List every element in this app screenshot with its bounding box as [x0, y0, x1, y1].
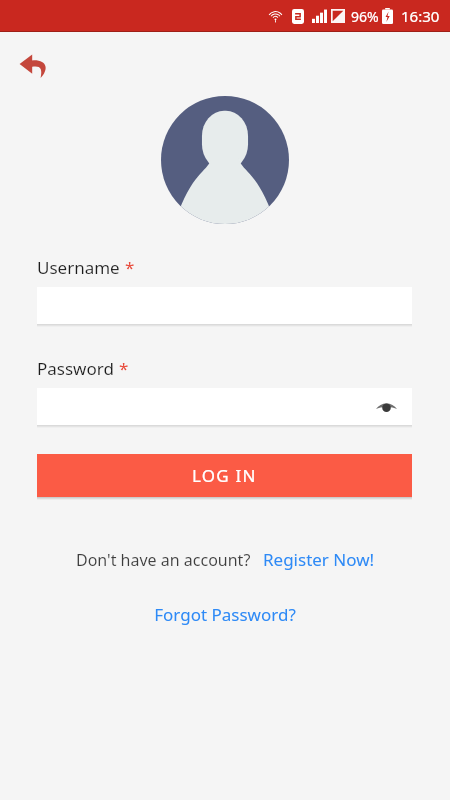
button[interactable]: Forgot Password? — [154, 603, 296, 626]
button[interactable]: Back — [10, 46, 58, 86]
staticText: Don't have an account? — [76, 549, 251, 571]
button[interactable]: Show password — [371, 394, 401, 420]
staticText: * — [125, 256, 135, 279]
staticText: Username — [37, 256, 120, 279]
staticText: Register Now! — [263, 548, 375, 571]
button[interactable]: LOG IN — [37, 454, 412, 497]
staticText: Password — [37, 357, 114, 380]
staticText: * — [119, 357, 129, 380]
staticText: Forgot Password? — [154, 603, 296, 626]
staticText: LOG IN — [192, 464, 257, 487]
staticText: 96% — [351, 7, 379, 26]
button[interactable]: Show password — [37, 388, 412, 425]
staticText: 16:30 — [401, 6, 440, 26]
button[interactable]: Register Now! — [263, 548, 375, 571]
